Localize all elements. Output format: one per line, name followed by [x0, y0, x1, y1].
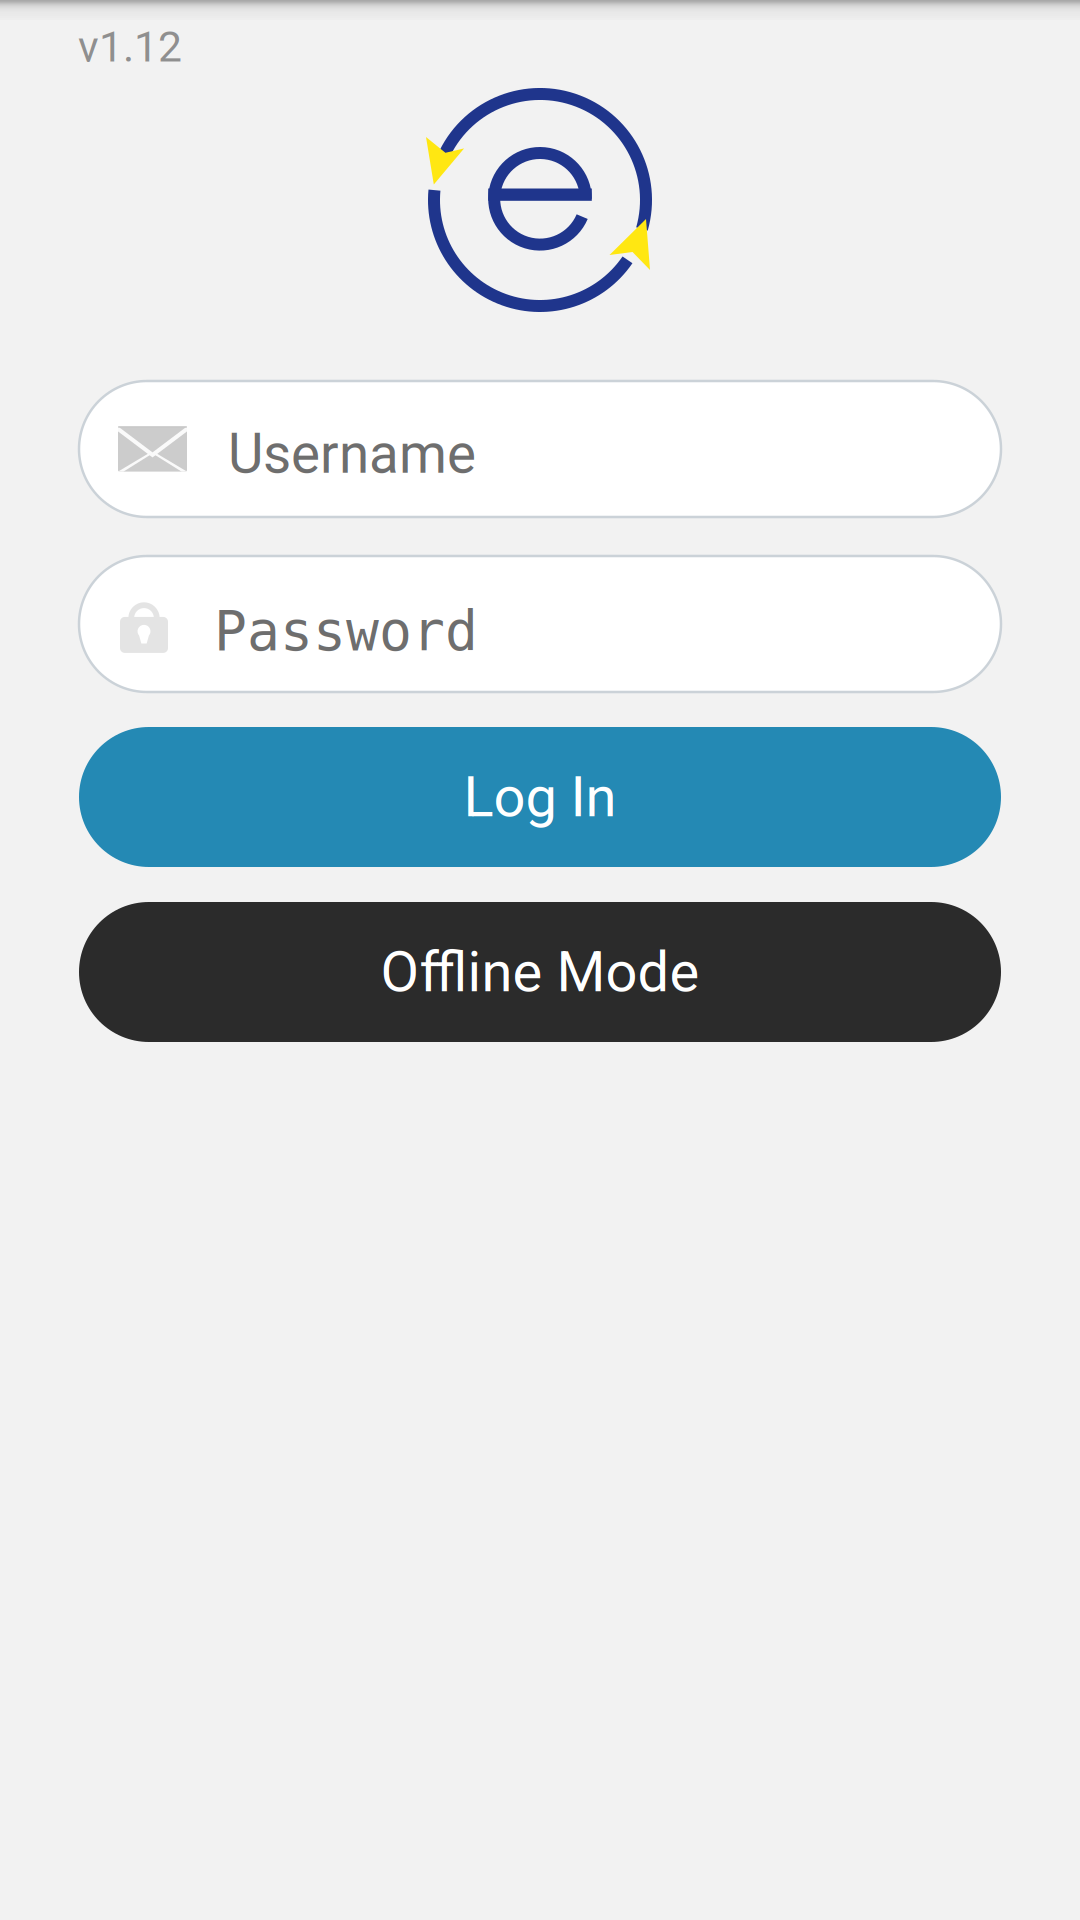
button[interactable]: Username	[79, 381, 1001, 517]
staticText: v1.12	[78, 22, 182, 72]
staticText: Offline Mode	[380, 939, 699, 1005]
staticText: Password	[214, 599, 478, 663]
button[interactable]: Offline Mode	[79, 902, 1001, 1042]
button[interactable]: Log In	[79, 727, 1001, 867]
staticText: Username	[228, 422, 476, 486]
button[interactable]: Password	[79, 556, 1001, 692]
staticText: Log In	[463, 764, 616, 830]
